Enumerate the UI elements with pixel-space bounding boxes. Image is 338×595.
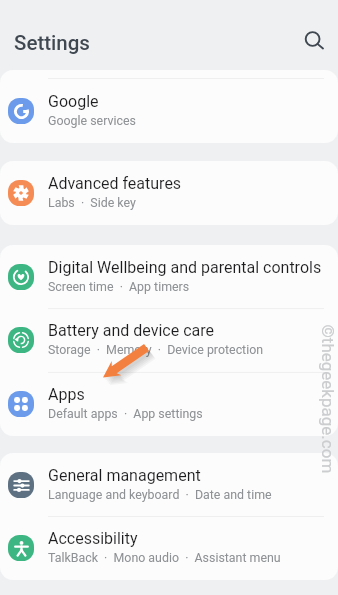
button[interactable]: Accessibility: [0, 516, 338, 580]
staticText: Labs · Side key: [48, 195, 136, 210]
button[interactable]: Battery and device care: [0, 308, 338, 372]
staticText: Storage · Memory · Device protection: [48, 342, 264, 357]
staticText: Google: [48, 92, 99, 111]
staticText: Google services: [48, 113, 136, 128]
staticText: TalkBack · Mono audio · Assistant menu: [48, 550, 281, 565]
staticText: Screen time · App timers: [48, 279, 190, 294]
button[interactable]: Search: [294, 21, 330, 57]
button[interactable]: General management: [0, 453, 338, 516]
staticText: ©thegeekpage.com: [317, 324, 337, 473]
staticText: Default apps · App settings: [48, 406, 203, 421]
staticText: Settings: [14, 31, 90, 55]
staticText: Language and keyboard · Date and time: [48, 487, 272, 502]
staticText: Accessibility: [48, 529, 138, 548]
button[interactable]: Advanced features: [0, 161, 338, 225]
button[interactable]: Google: [0, 79, 338, 143]
button[interactable]: Apps: [0, 372, 338, 436]
staticText: General management: [48, 466, 201, 485]
staticText: Battery and device care: [48, 321, 214, 340]
staticText: Advanced features: [48, 174, 182, 193]
button[interactable]: Digital Wellbeing and parental controls: [0, 245, 338, 308]
staticText: Digital Wellbeing and parental controls: [48, 258, 322, 277]
staticText: Apps: [48, 385, 85, 404]
